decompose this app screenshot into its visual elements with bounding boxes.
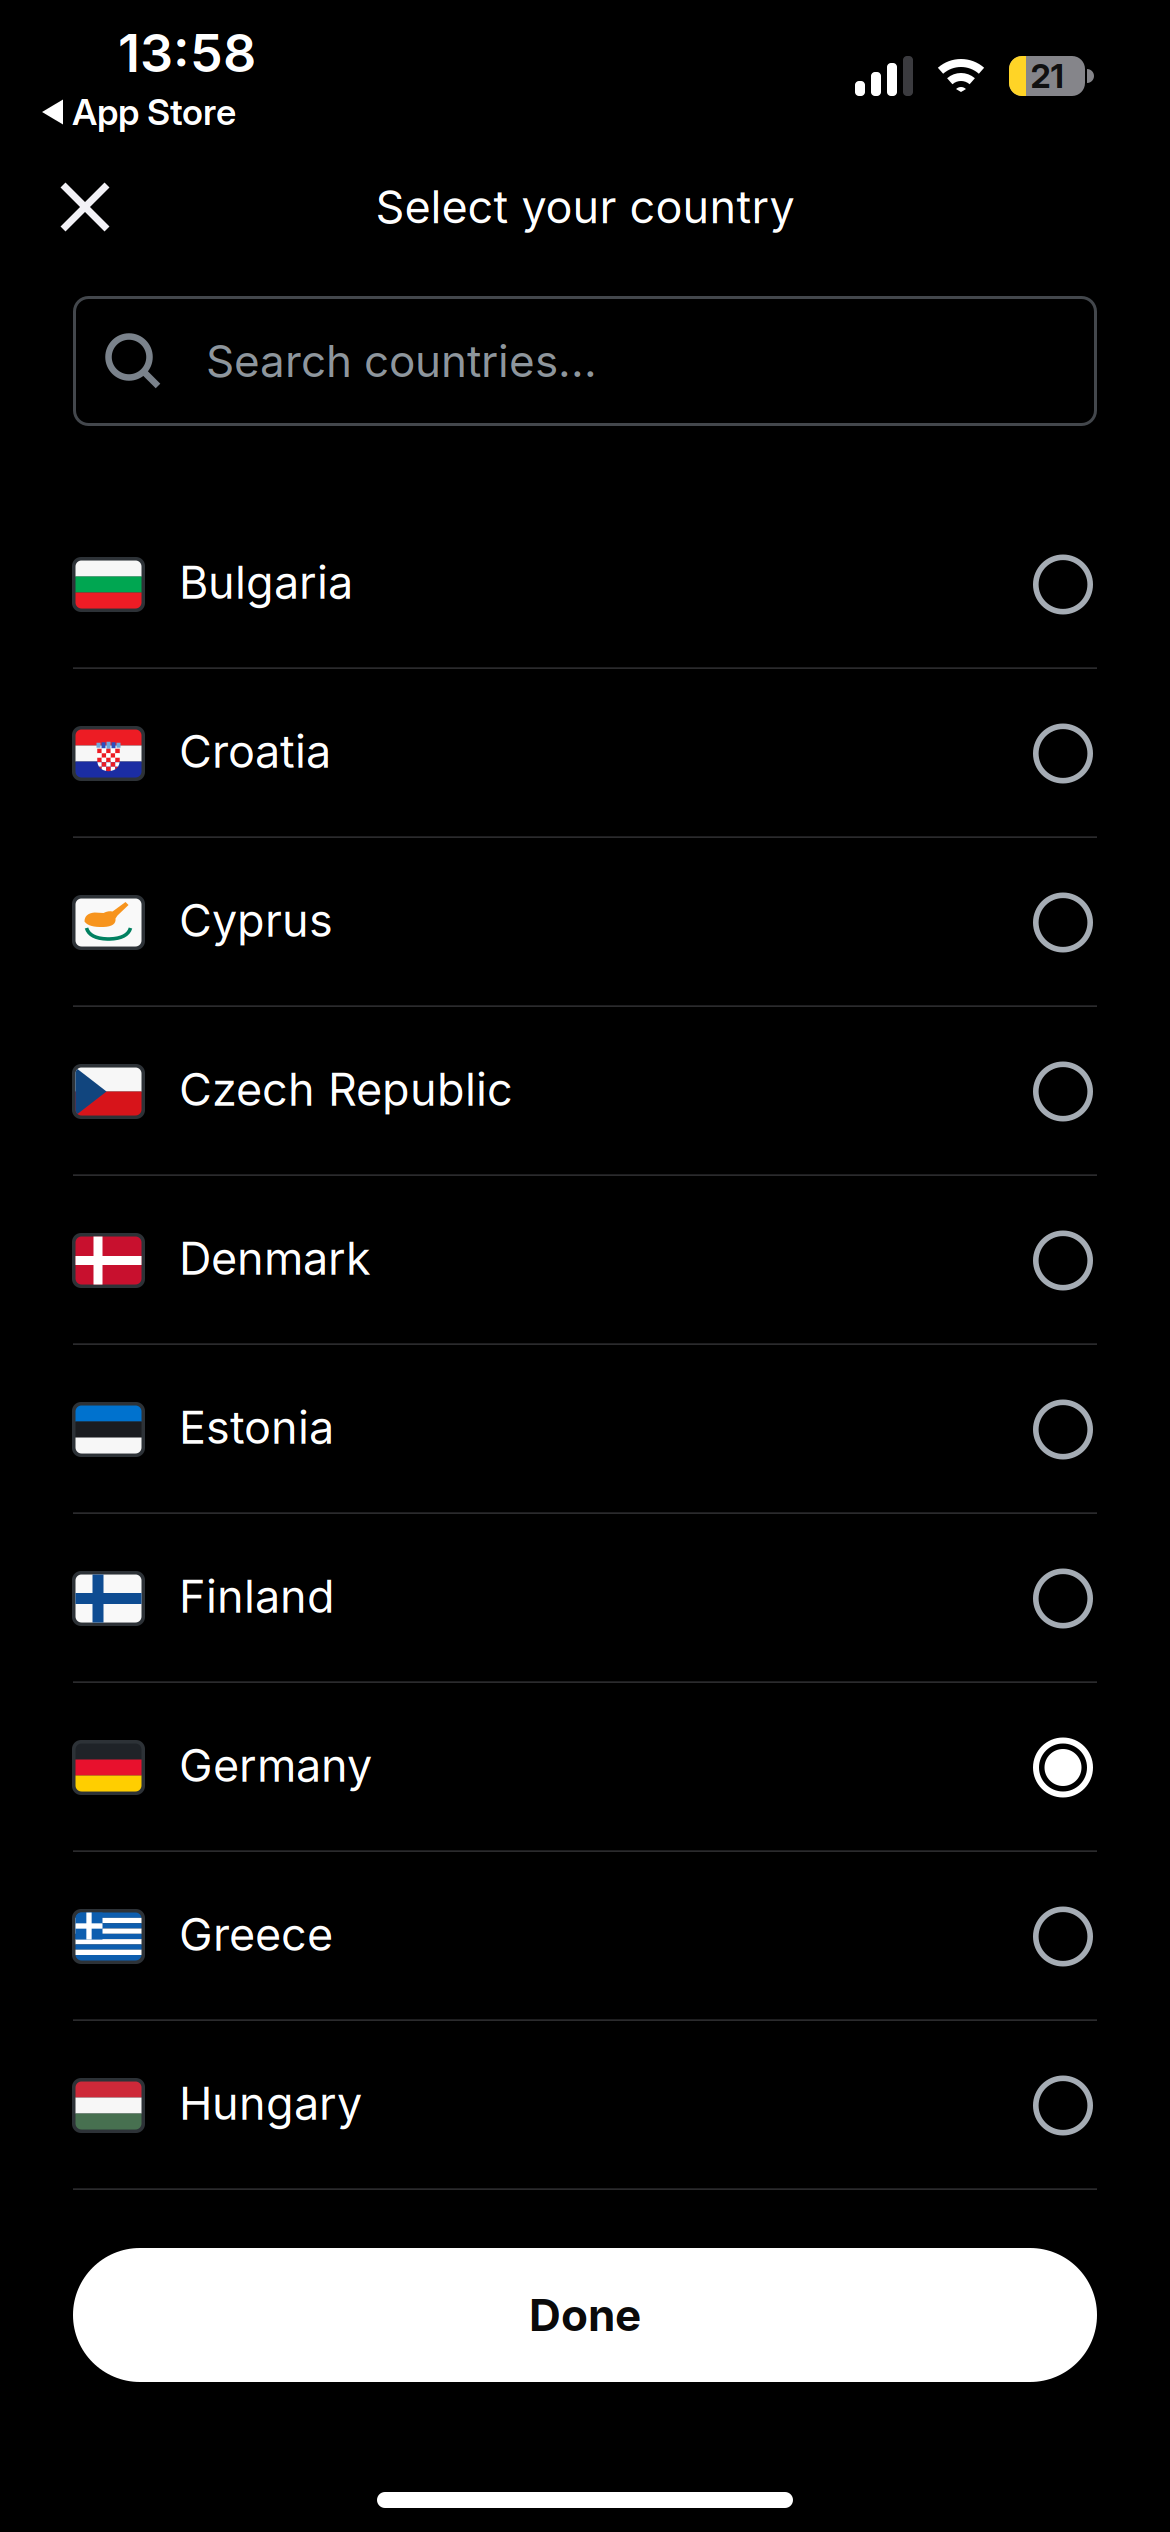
button[interactable]: Done	[73, 2248, 1097, 2382]
staticText: Greece	[179, 1907, 333, 1962]
button[interactable]: Czech Republic	[0, 1007, 1170, 1176]
button[interactable]: Hungary	[0, 2021, 1170, 2190]
staticText: Estonia	[179, 1400, 334, 1455]
staticText: Croatia	[179, 724, 331, 779]
staticText: 13:58	[118, 21, 256, 84]
staticText: Cyprus	[179, 893, 333, 948]
button[interactable]: Search countries...	[73, 296, 1097, 426]
staticText: Germany	[179, 1738, 372, 1793]
staticText: Czech Republic	[179, 1062, 513, 1117]
button[interactable]	[55, 177, 115, 237]
button[interactable]: Finland	[0, 1514, 1170, 1683]
button[interactable]: Bulgaria	[0, 500, 1170, 669]
button[interactable]: Cyprus	[0, 838, 1170, 1007]
button[interactable]: Denmark	[0, 1176, 1170, 1345]
staticText: Finland	[179, 1569, 335, 1624]
button[interactable]: Estonia	[0, 1345, 1170, 1514]
staticText: Select your country	[375, 180, 794, 234]
button[interactable]: App Store	[42, 90, 442, 134]
staticText: Search countries...	[206, 334, 597, 388]
staticText: Hungary	[179, 2076, 362, 2131]
staticText: Bulgaria	[179, 555, 353, 610]
staticText: 21	[1030, 56, 1063, 96]
staticText: Denmark	[179, 1231, 371, 1286]
button[interactable]: Germany	[0, 1683, 1170, 1852]
button[interactable]: Greece	[0, 1852, 1170, 2021]
button[interactable]: Croatia	[0, 669, 1170, 838]
staticText: App Store	[72, 90, 236, 134]
staticText: Done	[529, 2288, 641, 2342]
